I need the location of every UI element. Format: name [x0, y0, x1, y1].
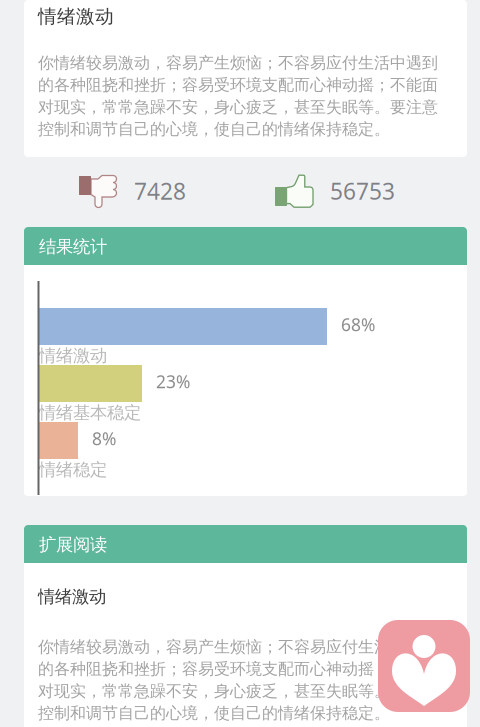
- staticText: 情绪稳定: [39, 459, 107, 480]
- button[interactable]: Favourite: [378, 620, 470, 712]
- staticText: 情绪激动: [38, 586, 106, 607]
- button[interactable]: 7428: [79, 169, 199, 213]
- staticText: 扩展阅读: [39, 534, 107, 555]
- staticText: 7428: [134, 176, 186, 206]
- staticText: 56753: [330, 176, 395, 206]
- staticText: 情绪基本稳定: [39, 402, 141, 423]
- staticText: 结果统计: [39, 236, 107, 257]
- button[interactable]: 56753: [275, 169, 410, 213]
- staticText: 8%: [92, 427, 116, 450]
- staticText: 你情绪较易激动，容易产生烦恼；不容易应付生活中遇到的各种阻挠和挫折；容易受环境支…: [38, 637, 438, 723]
- staticText: 23%: [156, 370, 190, 393]
- staticText: 情绪激动: [38, 5, 114, 28]
- staticText: 情绪激动: [39, 345, 107, 366]
- staticText: 68%: [341, 313, 375, 336]
- staticText: 你情绪较易激动，容易产生烦恼；不容易应付生活中遇到的各种阻挠和挫折；容易受环境支…: [38, 53, 438, 139]
